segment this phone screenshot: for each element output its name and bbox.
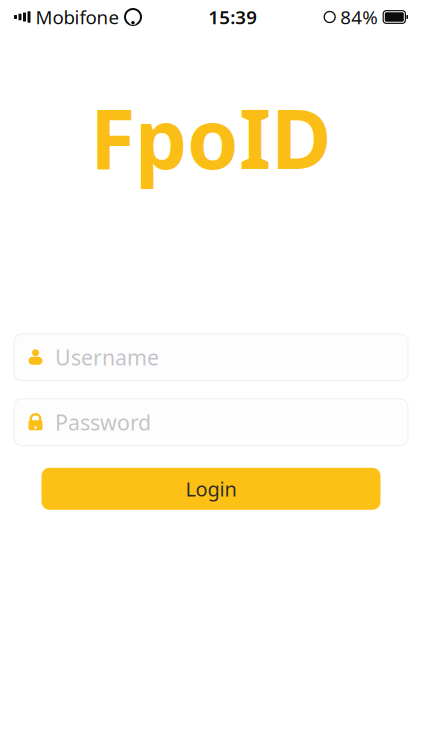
- staticText: Login: [185, 475, 236, 502]
- button[interactable]: Username: [14, 334, 408, 381]
- button[interactable]: Login: [41, 468, 380, 510]
- button[interactable]: Password: [14, 399, 408, 446]
- staticText: Mobifone: [35, 5, 119, 29]
- staticText: 15:39: [208, 5, 257, 29]
- staticText: 84%: [340, 5, 378, 29]
- staticText: Password: [55, 408, 151, 436]
- staticText: Username: [55, 343, 159, 371]
- staticText: FpoID: [90, 82, 332, 192]
